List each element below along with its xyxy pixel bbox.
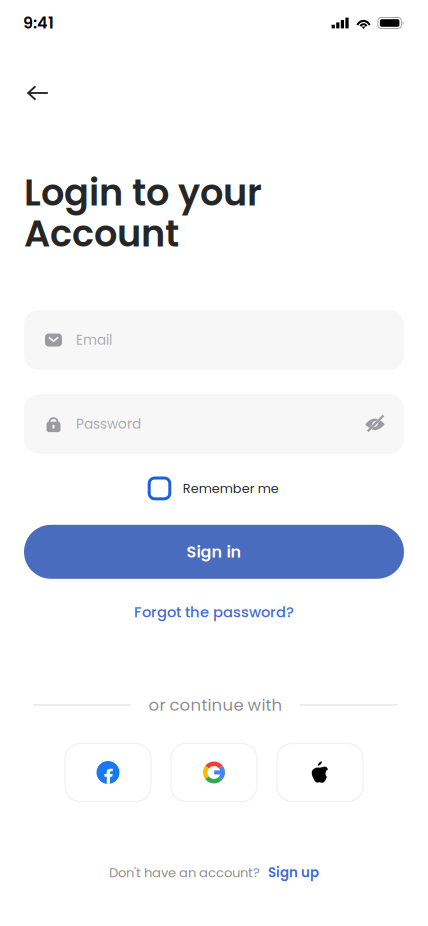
staticText: Forgot the password? (134, 602, 294, 622)
button[interactable]: Continue with Apple (277, 743, 363, 801)
button[interactable]: Back (16, 68, 60, 112)
button[interactable]: Forgot the password? (134, 594, 294, 630)
staticText: or continue with (148, 693, 282, 716)
staticText: Account (24, 208, 179, 259)
staticText: Sign in (186, 541, 241, 563)
button[interactable]: Sign in (24, 525, 404, 579)
button[interactable]: Remember me (149, 471, 279, 506)
staticText: Login to your (24, 167, 262, 218)
staticText: Sign up (268, 863, 319, 882)
button[interactable]: Sign up (268, 863, 319, 882)
staticText: Remember me (183, 479, 279, 497)
button[interactable]: Continue with Google (171, 743, 257, 801)
staticText: Password (76, 414, 141, 433)
button[interactable]: Show password (365, 414, 385, 433)
staticText: Email (76, 330, 112, 349)
staticText: Don't have an account? (109, 863, 260, 882)
staticText: 9:41 (23, 12, 54, 34)
button[interactable]: Continue with Facebook (65, 743, 151, 801)
